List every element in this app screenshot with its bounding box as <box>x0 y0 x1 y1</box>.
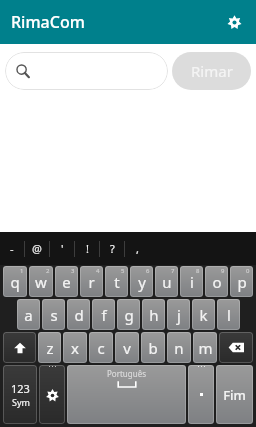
staticText: 8 <box>196 267 200 275</box>
staticText: f <box>101 305 107 325</box>
button[interactable]: c <box>89 332 113 363</box>
staticText: Sym <box>12 396 30 408</box>
button[interactable]: t <box>105 266 128 297</box>
button[interactable]: 123 <box>3 365 37 424</box>
staticText: @ <box>32 241 42 256</box>
staticText: m <box>198 338 213 358</box>
staticText: k <box>199 305 208 325</box>
staticText: v <box>123 338 131 358</box>
button[interactable]: Rimar <box>172 52 251 90</box>
button[interactable]: f <box>92 299 115 330</box>
staticText: 6 <box>146 267 150 275</box>
staticText: , <box>136 241 139 256</box>
button[interactable]: u <box>155 266 178 297</box>
button[interactable]: a <box>17 299 40 330</box>
staticText: j <box>177 305 181 325</box>
button[interactable]: Space <box>67 365 186 424</box>
button[interactable]: s <box>42 299 65 330</box>
button[interactable]: y <box>130 266 153 297</box>
staticText: e <box>62 272 71 292</box>
button[interactable]: - <box>0 232 24 265</box>
staticText: u <box>162 272 172 292</box>
button[interactable]: Backspace <box>219 332 253 363</box>
staticText: q <box>10 272 20 292</box>
button[interactable]: n <box>167 332 191 363</box>
button[interactable]: ! <box>75 232 99 265</box>
staticText: z <box>46 338 54 358</box>
staticText: i <box>190 272 194 292</box>
button[interactable]: e <box>55 266 78 297</box>
button[interactable]: Period <box>188 365 214 424</box>
button[interactable]: , <box>125 232 149 265</box>
staticText: n <box>174 338 184 358</box>
staticText: w <box>35 272 47 292</box>
staticText: c <box>97 338 105 358</box>
staticText: o <box>212 272 222 292</box>
staticText: t <box>114 272 120 292</box>
staticText: ! <box>86 241 89 256</box>
staticText: Rimar <box>191 61 233 81</box>
button[interactable]: Keyboard settings <box>39 365 65 424</box>
staticText: x <box>71 338 79 358</box>
button[interactable]: r <box>80 266 103 297</box>
staticText: p <box>237 272 247 292</box>
button[interactable]: j <box>167 299 190 330</box>
staticText: 123 <box>11 381 30 396</box>
staticText: 7 <box>171 267 175 275</box>
button[interactable]: l <box>217 299 240 330</box>
button[interactable]: h <box>142 299 165 330</box>
button[interactable] <box>5 52 168 90</box>
button[interactable]: d <box>67 299 90 330</box>
button[interactable]: m <box>193 332 217 363</box>
button[interactable]: b <box>141 332 165 363</box>
staticText: r <box>88 272 95 292</box>
staticText: 0 <box>246 267 250 275</box>
staticText: 2 <box>46 267 50 275</box>
staticText: 4 <box>96 267 100 275</box>
staticText: 5 <box>121 267 125 275</box>
button[interactable]: g <box>117 299 140 330</box>
button[interactable]: Settings <box>218 6 250 38</box>
button[interactable]: w <box>29 266 53 297</box>
staticText: RimaCom <box>11 11 85 33</box>
staticText: l <box>227 305 231 325</box>
staticText: h <box>149 305 159 325</box>
staticText: 1 <box>20 267 24 275</box>
button[interactable]: v <box>115 332 139 363</box>
button[interactable]: p <box>230 266 253 297</box>
button[interactable]: @ <box>25 232 49 265</box>
button[interactable]: q <box>3 266 27 297</box>
button[interactable]: x <box>63 332 87 363</box>
staticText: a <box>24 305 33 325</box>
staticText: 9 <box>221 267 225 275</box>
staticText: ' <box>61 241 64 256</box>
button[interactable]: Shift <box>3 332 36 363</box>
button[interactable]: o <box>205 266 228 297</box>
staticText: d <box>74 305 84 325</box>
button[interactable]: k <box>192 299 215 330</box>
staticText: ? <box>110 241 115 256</box>
button[interactable]: ' <box>50 232 74 265</box>
staticText: s <box>50 305 58 325</box>
staticText: g <box>124 305 134 325</box>
staticText: y <box>138 272 146 292</box>
staticText: Fim <box>223 386 246 404</box>
staticText: Português <box>107 368 147 379</box>
staticText: - <box>10 241 14 256</box>
staticText: 3 <box>71 267 75 275</box>
staticText: b <box>148 338 158 358</box>
button[interactable]: i <box>180 266 203 297</box>
button[interactable]: ? <box>100 232 124 265</box>
button[interactable]: z <box>38 332 61 363</box>
button[interactable]: Fim <box>216 365 253 424</box>
